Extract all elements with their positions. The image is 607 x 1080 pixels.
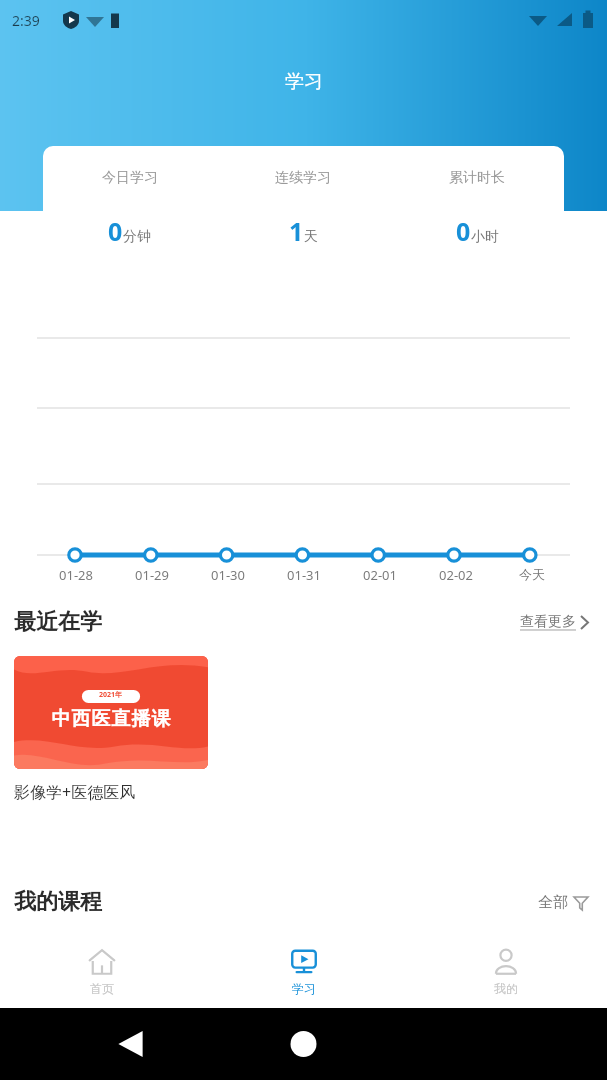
staticText: 累计时长: [449, 169, 505, 187]
button[interactable]: 学习: [203, 936, 405, 1008]
staticText: 我的课程: [14, 888, 102, 916]
staticText: 最近在学: [14, 608, 102, 636]
staticText: 今日学习: [102, 169, 158, 187]
staticText: 02-01: [363, 566, 397, 584]
staticText: 01-29: [135, 566, 169, 584]
staticText: 学习: [285, 70, 323, 94]
button[interactable]: 全部: [534, 889, 593, 916]
button[interactable]: 2021年: [14, 656, 208, 803]
staticText: 首页: [90, 981, 114, 996]
button[interactable]: 查看更多: [516, 609, 593, 635]
staticText: 分钟: [123, 228, 151, 246]
staticText: 02-02: [439, 566, 473, 584]
staticText: 0: [108, 214, 123, 248]
staticText: 2:39: [12, 11, 40, 30]
button[interactable]: 首页: [0, 936, 203, 1008]
staticText: 0: [456, 214, 471, 248]
staticText: 小时: [471, 228, 499, 246]
staticText: 影像学+医德医风: [14, 781, 136, 803]
button[interactable]: 我的: [405, 936, 607, 1008]
staticText: 我的: [494, 981, 518, 996]
staticText: 连续学习: [275, 169, 331, 187]
staticText: 2021年: [99, 690, 123, 700]
staticText: 01-30: [211, 566, 245, 584]
staticText: 中西医直播课: [51, 707, 171, 731]
staticText: 查看更多: [520, 613, 576, 631]
staticText: 天: [304, 228, 318, 246]
staticText: 今天: [519, 566, 545, 582]
staticText: 全部: [538, 893, 568, 912]
staticText: 1: [289, 214, 304, 248]
staticText: 01-28: [59, 566, 93, 584]
staticText: 01-31: [287, 566, 321, 584]
staticText: 学习: [292, 981, 316, 996]
button[interactable]: 今日学习: [43, 146, 564, 285]
